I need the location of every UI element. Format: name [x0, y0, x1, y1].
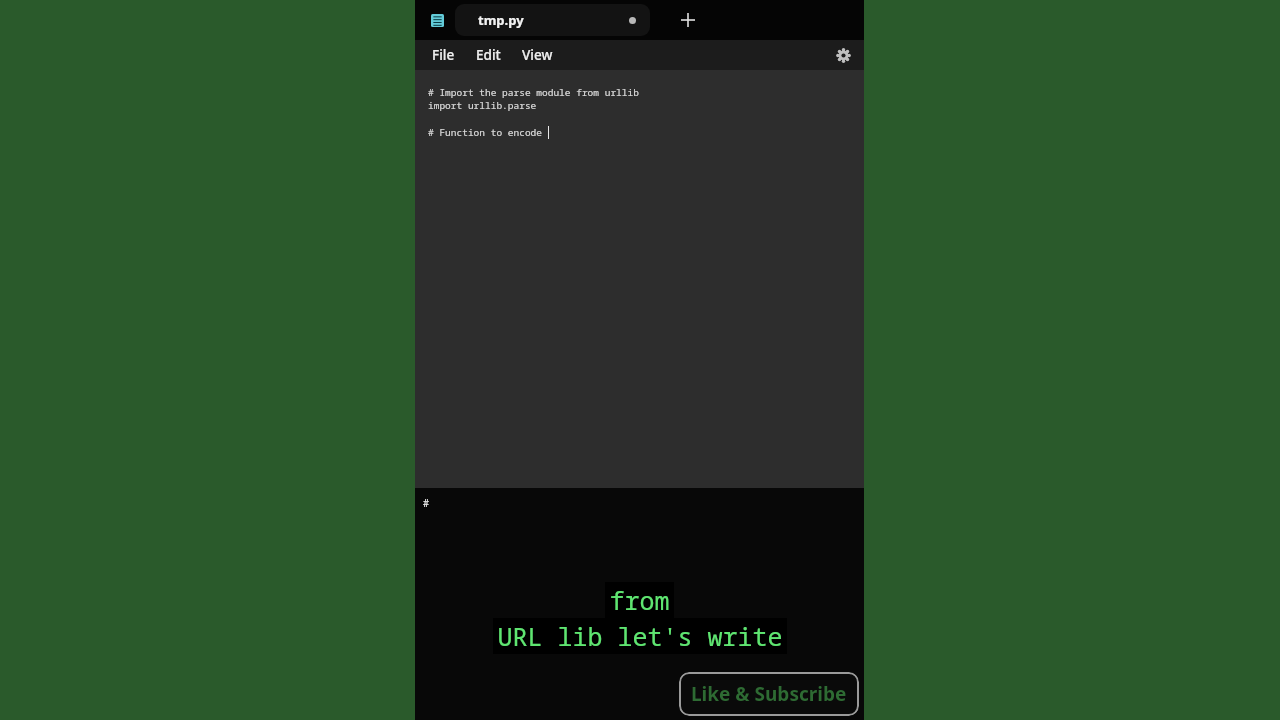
button[interactable]: File — [430, 43, 457, 67]
button[interactable]: File type — [426, 9, 448, 31]
button[interactable]: New tab — [673, 5, 703, 35]
button[interactable]: Like & Subscribe — [679, 672, 859, 716]
staticText: File — [432, 46, 455, 64]
staticText: from — [609, 583, 670, 617]
staticText: Like & Subscribe — [691, 681, 847, 707]
staticText: View — [522, 46, 553, 64]
staticText: tmp.py — [478, 11, 524, 29]
staticText: # Function to encode — [428, 126, 548, 139]
staticText: # Import the parse module from urllib — [428, 86, 639, 99]
staticText: URL lib let's write — [497, 619, 783, 653]
staticText: # — [423, 496, 429, 510]
button[interactable]: tmp.py — [455, 4, 650, 36]
button[interactable]: Settings — [829, 41, 857, 69]
button[interactable]: Edit — [474, 43, 503, 67]
button[interactable]: View — [520, 43, 555, 67]
staticText: Edit — [476, 46, 501, 64]
staticText: import urllib.parse — [428, 99, 537, 112]
